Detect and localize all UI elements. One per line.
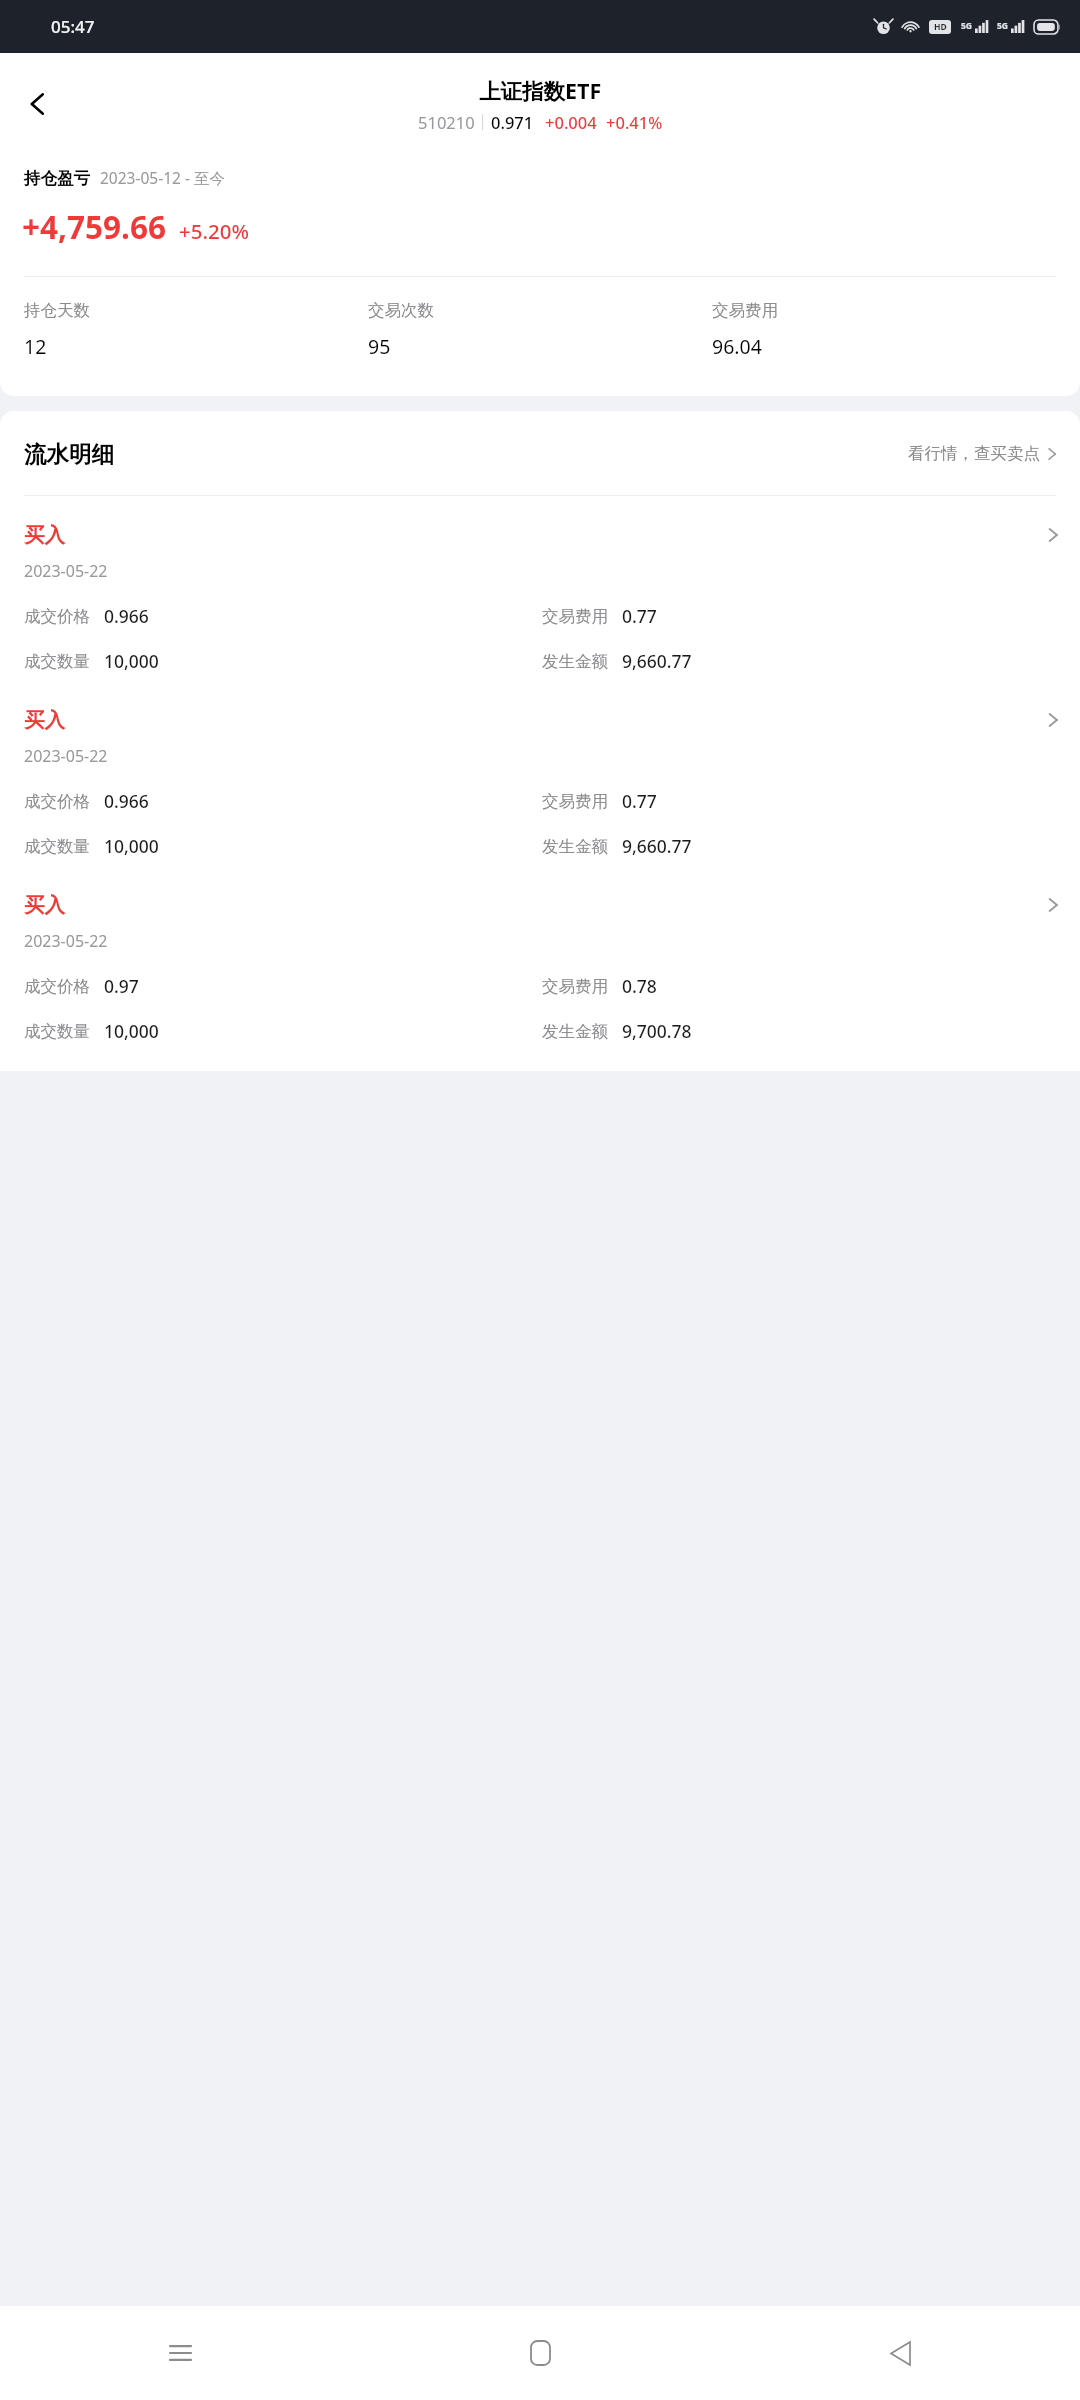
staticText: 成交数量 <box>24 1021 90 1042</box>
staticText: 10,000 <box>104 834 159 858</box>
staticText: 510210 <box>418 111 475 133</box>
staticText: 0.78 <box>622 974 657 998</box>
staticText: +0.41% <box>606 111 663 133</box>
button[interactable]: Back <box>14 80 62 128</box>
staticText: 买入 <box>24 707 65 733</box>
button[interactable]: Back <box>720 2306 1080 2400</box>
staticText: 0.966 <box>104 604 149 628</box>
staticText: 5G <box>961 20 973 32</box>
staticText: 2023-05-12 - 至今 <box>100 167 225 188</box>
staticText: HD <box>934 21 947 33</box>
staticText: 0.77 <box>622 604 657 628</box>
staticText: 成交价格 <box>24 791 90 812</box>
staticText: 交易费用 <box>542 976 608 997</box>
staticText: 05:47 <box>51 15 95 38</box>
staticText: 交易费用 <box>542 791 608 812</box>
staticText: 0.97 <box>104 974 139 998</box>
staticText: 0.971 <box>491 111 534 133</box>
staticText: +5.20% <box>179 217 249 245</box>
staticText: 发生金额 <box>542 1021 608 1042</box>
button[interactable]: 买入 <box>0 866 1080 1051</box>
staticText: 2023-05-22 <box>24 560 108 582</box>
staticText: 成交数量 <box>24 836 90 857</box>
staticText: 流水明细 <box>24 440 114 468</box>
staticText: 5G <box>997 20 1009 32</box>
staticText: 看行情，查买卖点 <box>908 443 1040 464</box>
staticText: 0.77 <box>622 789 657 813</box>
staticText: 交易费用 <box>542 606 608 627</box>
button[interactable]: Home <box>360 2306 720 2400</box>
button[interactable]: 看行情，查买卖点 <box>906 437 1060 470</box>
staticText: 上证指数ETF <box>479 76 602 105</box>
staticText: 买入 <box>24 892 65 918</box>
staticText: 95 <box>368 333 391 360</box>
staticText: 成交价格 <box>24 976 90 997</box>
button[interactable]: Recents <box>0 2306 360 2400</box>
staticText: 发生金额 <box>542 836 608 857</box>
staticText: 9,660.77 <box>622 649 692 673</box>
staticText: 9,700.78 <box>622 1019 692 1043</box>
staticText: 10,000 <box>104 1019 159 1043</box>
staticText: +4,759.66 <box>22 205 166 248</box>
staticText: 0.966 <box>104 789 149 813</box>
staticText: 交易次数 <box>368 300 434 321</box>
staticText: 成交数量 <box>24 651 90 672</box>
staticText: 持仓盈亏 <box>24 168 90 189</box>
button[interactable]: 买入 <box>0 681 1080 866</box>
staticText: 2023-05-22 <box>24 930 108 952</box>
staticText: 成交价格 <box>24 606 90 627</box>
staticText: +0.004 <box>545 111 597 133</box>
staticText: 96.04 <box>712 333 762 360</box>
button[interactable]: 买入 <box>0 496 1080 681</box>
staticText: 9,660.77 <box>622 834 692 858</box>
staticText: 2023-05-22 <box>24 745 108 767</box>
staticText: 持仓天数 <box>24 300 90 321</box>
staticText: 买入 <box>24 522 65 548</box>
staticText: 发生金额 <box>542 651 608 672</box>
staticText: 12 <box>24 333 47 360</box>
staticText: 交易费用 <box>712 300 778 321</box>
staticText: 10,000 <box>104 649 159 673</box>
